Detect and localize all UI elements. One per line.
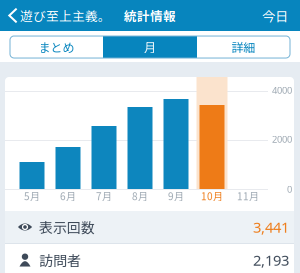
staticText: 今日 [262, 6, 288, 25]
button[interactable]: まとめ [10, 36, 103, 58]
staticText: まとめ [38, 38, 74, 56]
staticText: 2000 [272, 133, 292, 145]
staticText: 訪問者 [39, 250, 81, 270]
staticText: 2,193 [253, 250, 289, 270]
staticText: 11月 [237, 189, 259, 203]
button[interactable]: 訪問者 [5, 244, 294, 273]
staticText: 遊び至上主義。 [20, 6, 111, 25]
staticText: 統計情報 [124, 6, 176, 25]
staticText: 7月 [96, 189, 112, 203]
button[interactable]: 今日 [254, 0, 300, 31]
staticText: 3,441 [253, 217, 289, 237]
staticText: 4000 [272, 84, 292, 96]
staticText: 9月 [168, 189, 184, 203]
button[interactable]: 表示回数 [5, 211, 294, 243]
staticText: 8月 [132, 189, 148, 203]
staticText: 月 [144, 38, 156, 56]
button[interactable]: 月 [103, 36, 197, 58]
staticText: 詳細 [231, 38, 255, 56]
staticText: 5月 [24, 189, 40, 203]
staticText: 6月 [60, 189, 76, 203]
staticText: 表示回数 [39, 217, 95, 237]
staticText: 0 [287, 183, 292, 195]
button[interactable]: 遊び至上主義。 [0, 0, 117, 31]
button[interactable]: 詳細 [197, 36, 290, 58]
staticText: 10月 [201, 189, 223, 203]
